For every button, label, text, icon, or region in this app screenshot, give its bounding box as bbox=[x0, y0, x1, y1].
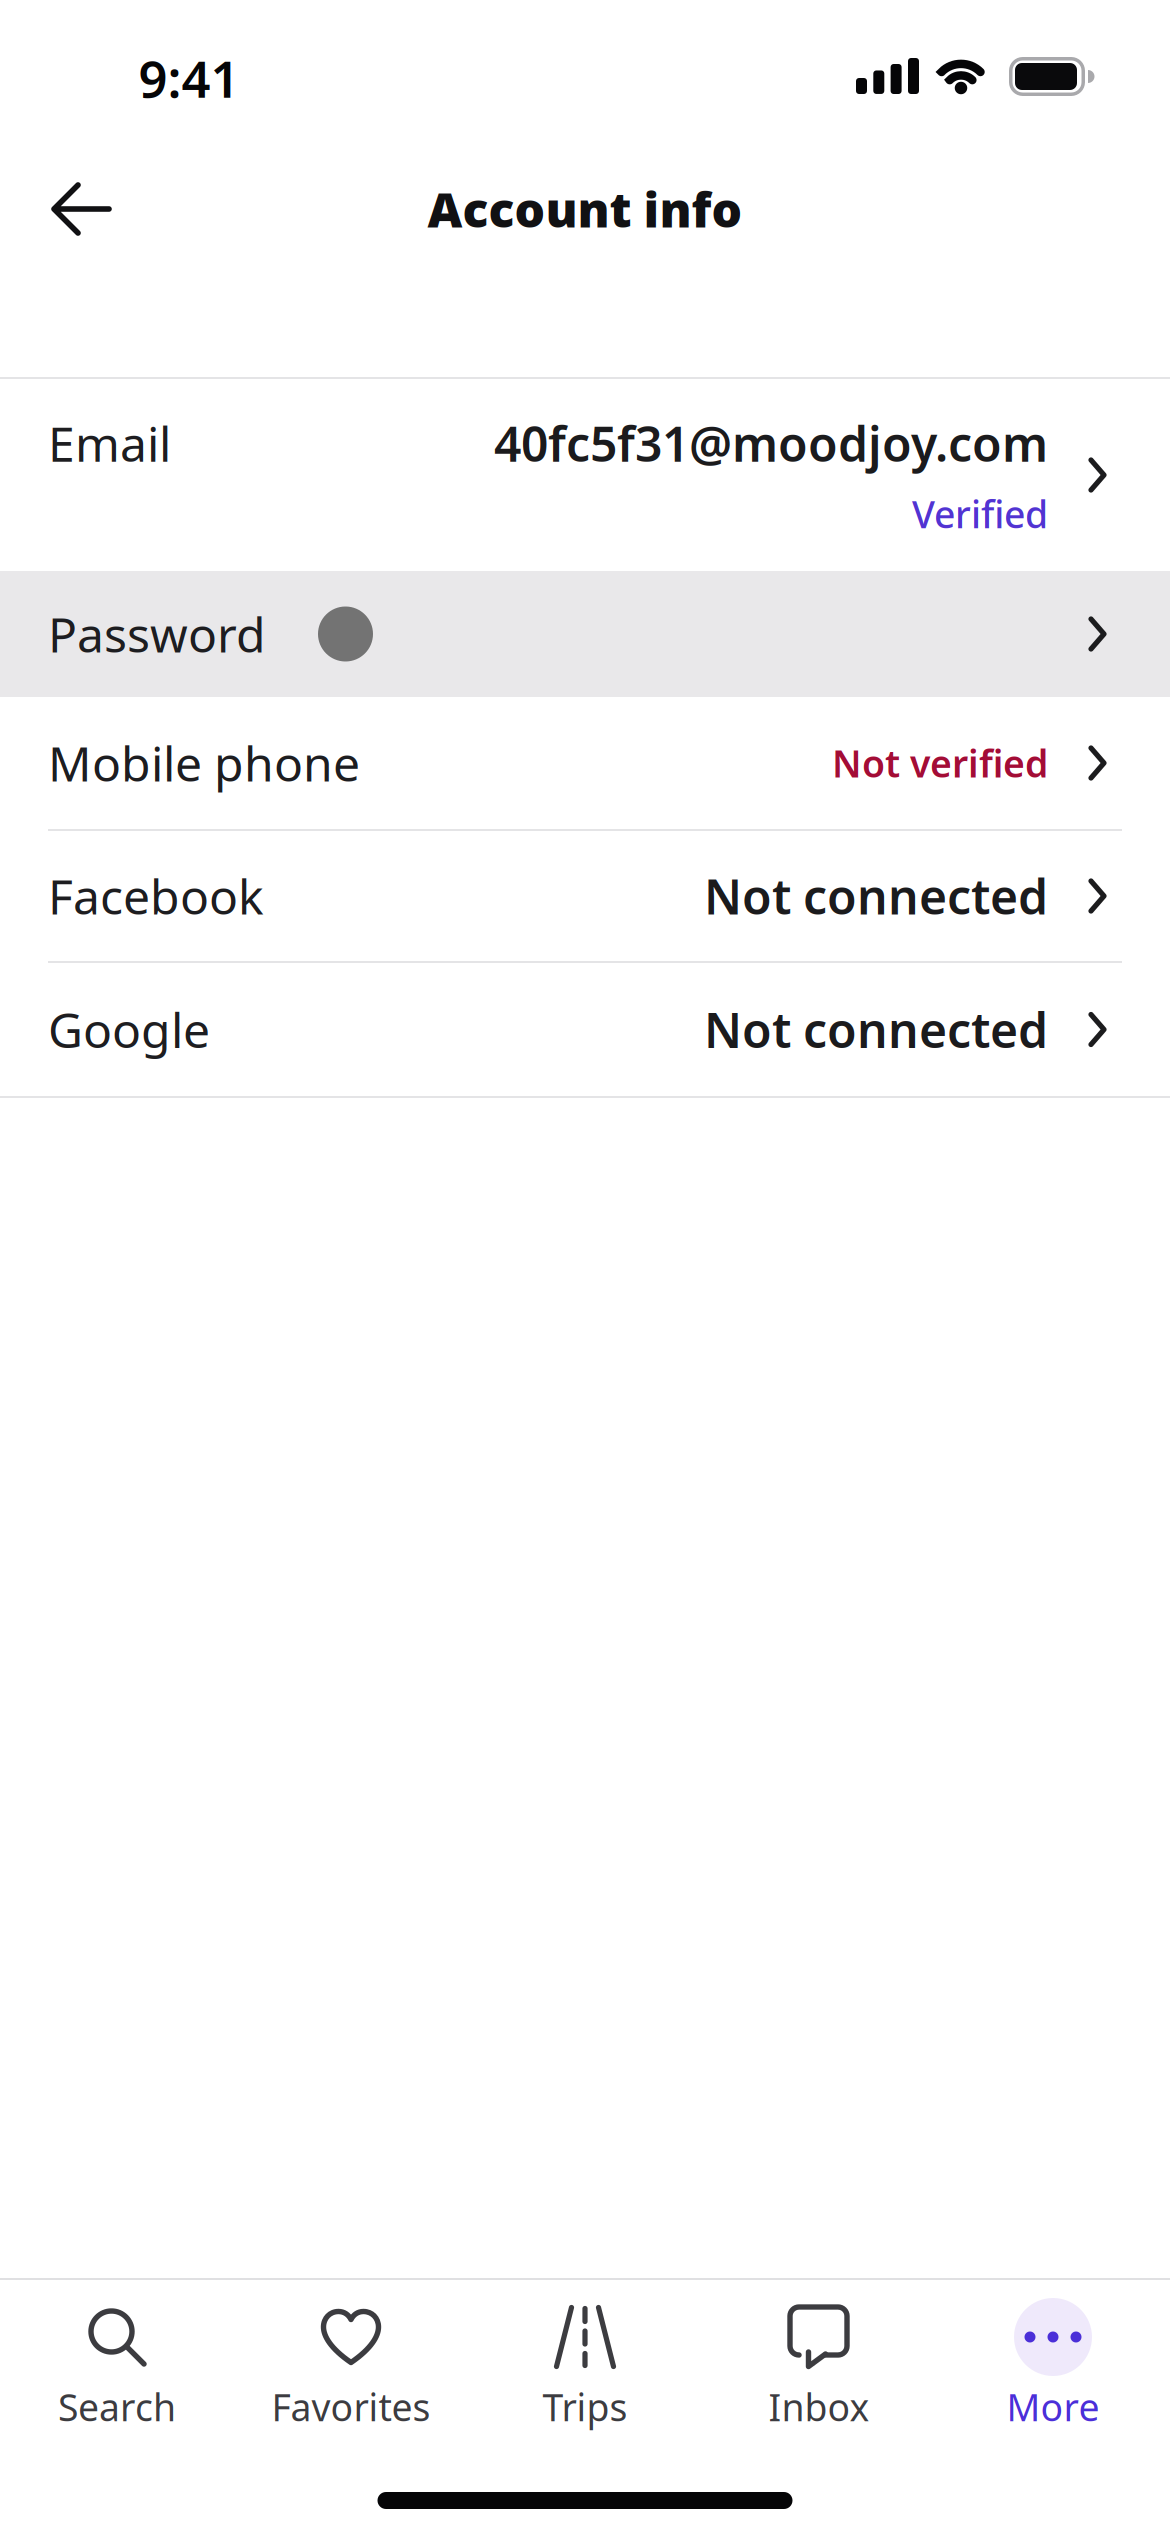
button[interactable]: Trips bbox=[468, 2292, 702, 2432]
button[interactable]: Password bbox=[0, 571, 1170, 697]
button[interactable]: Mobile phone bbox=[0, 697, 1170, 829]
staticText: Facebook bbox=[48, 864, 264, 928]
staticText: Account info bbox=[427, 177, 742, 241]
button[interactable]: Favorites bbox=[234, 2292, 468, 2432]
staticText: Google bbox=[48, 998, 210, 1061]
staticText: Not verified bbox=[832, 738, 1048, 788]
staticText: Password bbox=[48, 602, 266, 666]
staticText: Inbox bbox=[768, 2382, 869, 2432]
button[interactable]: Inbox bbox=[702, 2292, 936, 2432]
staticText: 40fc5f31@moodjoy.com bbox=[494, 411, 1048, 475]
staticText: Not connected bbox=[704, 998, 1048, 1061]
button[interactable]: More bbox=[936, 2292, 1170, 2432]
staticText: Email bbox=[48, 411, 171, 475]
staticText: Not connected bbox=[704, 864, 1048, 928]
staticText: More bbox=[1006, 2382, 1099, 2432]
button[interactable]: Facebook bbox=[0, 831, 1170, 961]
button[interactable]: Google bbox=[0, 963, 1170, 1096]
button[interactable]: Back bbox=[0, 170, 113, 248]
button[interactable]: Search bbox=[0, 2292, 234, 2432]
staticText: Verified bbox=[912, 489, 1048, 539]
staticText: Favorites bbox=[271, 2382, 430, 2432]
staticText: 9:41 bbox=[138, 44, 239, 112]
staticText: Trips bbox=[542, 2382, 627, 2432]
button[interactable]: Email bbox=[0, 379, 1170, 571]
staticText: Search bbox=[58, 2382, 176, 2432]
staticText: Mobile phone bbox=[48, 731, 360, 795]
